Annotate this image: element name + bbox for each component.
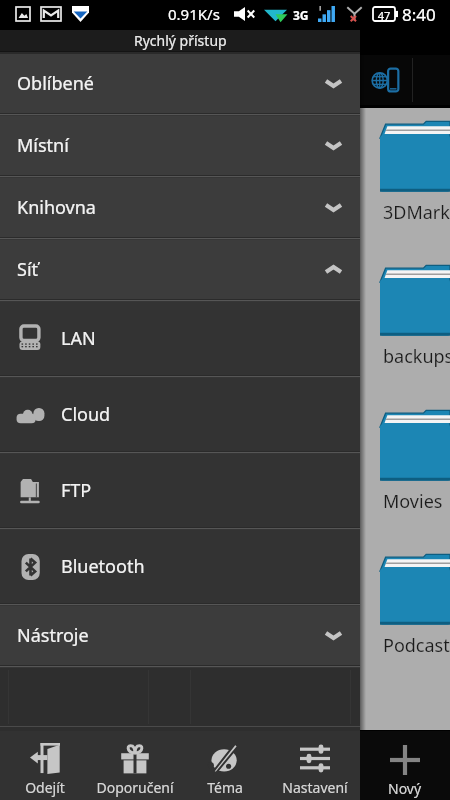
- staticText: 3G: [293, 7, 309, 23]
- button[interactable]: Network browse: [363, 55, 412, 105]
- staticText: Síť: [17, 257, 39, 282]
- staticText: Doporučení: [96, 778, 174, 797]
- button[interactable]: Místní: [0, 116, 360, 175]
- staticText: 8:40: [402, 3, 436, 26]
- button[interactable]: Doporučení: [90, 731, 180, 800]
- button[interactable]: Nastavení: [270, 731, 360, 800]
- staticText: Bluetooth: [61, 554, 145, 579]
- button[interactable]: Odejít: [0, 731, 90, 800]
- staticText: 3DMark: [383, 200, 450, 225]
- button[interactable]: backups: [380, 264, 450, 369]
- staticText: Podcasts: [383, 633, 450, 658]
- staticText: backups: [383, 344, 450, 369]
- staticText: LAN: [61, 326, 96, 351]
- button[interactable]: Síť: [0, 240, 360, 299]
- button[interactable]: Téma: [180, 731, 270, 800]
- button[interactable]: FTP: [0, 454, 360, 527]
- button[interactable]: Movies: [380, 409, 450, 514]
- staticText: Nástroje: [17, 623, 89, 648]
- button[interactable]: Nový: [360, 731, 450, 800]
- staticText: Knihovna: [17, 195, 96, 220]
- staticText: Nastavení: [282, 778, 348, 797]
- button[interactable]: Bluetooth: [0, 530, 360, 603]
- staticText: FTP: [61, 478, 92, 503]
- staticText: Rychlý přístup: [134, 31, 227, 50]
- button[interactable]: Podcasts: [380, 553, 450, 658]
- button[interactable]: Oblíbené: [0, 54, 360, 113]
- staticText: Cloud: [61, 402, 111, 427]
- button[interactable]: 3DMark: [380, 120, 450, 225]
- staticText: Odejít: [25, 778, 65, 797]
- button[interactable]: Knihovna: [0, 178, 360, 237]
- staticText: Téma: [207, 778, 243, 797]
- staticText: 0.91K/s: [168, 4, 220, 24]
- button[interactable]: Nástroje: [0, 606, 360, 665]
- staticText: Místní: [17, 133, 69, 158]
- staticText: 47: [373, 8, 395, 23]
- staticText: Movies: [383, 489, 443, 514]
- button[interactable]: Cloud: [0, 378, 360, 451]
- staticText: Nový: [388, 779, 422, 798]
- staticText: Oblíbené: [17, 71, 94, 96]
- button[interactable]: LAN: [0, 302, 360, 375]
